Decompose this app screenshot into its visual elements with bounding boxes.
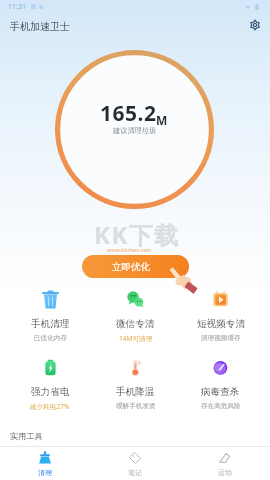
staticText: 减少耗电27% — [30, 402, 70, 411]
staticText: www.kkzhan.com — [107, 247, 152, 254]
staticText: 缓解手机发烫 — [116, 402, 156, 410]
button[interactable]: 清理 — [0, 447, 90, 480]
staticText: 手机降温 — [116, 386, 155, 398]
staticText: 病毒查杀 — [201, 386, 240, 398]
button[interactable]: 短视频专清 — [178, 290, 263, 342]
staticText: 建议清理垃圾 — [113, 126, 157, 135]
button[interactable]: 强力省电 — [7, 358, 93, 411]
staticText: 手机清理 — [31, 318, 70, 330]
staticText: KK下载 — [94, 218, 180, 251]
button[interactable]: Settings — [246, 16, 264, 34]
staticText: 已优化内存 — [34, 334, 67, 342]
button[interactable]: 病毒查杀 — [178, 358, 263, 410]
staticText: 短视频专清 — [197, 318, 245, 330]
staticText: M — [156, 112, 168, 128]
staticText: 实用工具 — [10, 431, 43, 441]
staticText: 强力省电 — [31, 386, 70, 398]
button[interactable]: 手机清理 — [7, 290, 93, 342]
staticText: 165.2 — [100, 99, 157, 128]
staticText: 11:31 — [8, 2, 26, 12]
staticText: 清理 — [38, 468, 52, 477]
staticText: 立即优化 — [112, 261, 150, 273]
button[interactable]: 运动 — [180, 447, 270, 480]
staticText: 笔记 — [128, 468, 142, 477]
staticText: 手机加速卫士 — [10, 20, 70, 33]
staticText: 运动 — [218, 468, 232, 477]
staticText: 清理视频缓存 — [201, 334, 241, 342]
staticText: 微信专清 — [116, 318, 155, 330]
button[interactable]: 手机降温 — [93, 358, 178, 410]
button[interactable]: 微信专清 — [93, 290, 178, 343]
button[interactable]: 笔记 — [90, 447, 180, 480]
staticText: 14M可清理 — [119, 334, 153, 343]
button[interactable]: 立即优化 — [82, 255, 189, 278]
staticText: 存在高危风险 — [201, 402, 241, 410]
